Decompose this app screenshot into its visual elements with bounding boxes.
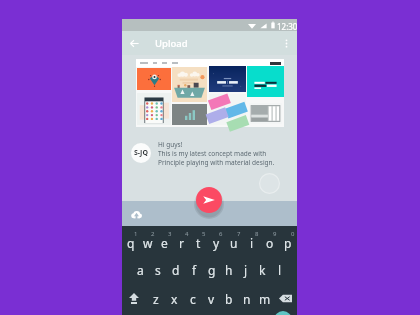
staticText: Upload	[155, 37, 188, 50]
button[interactable]: Shift	[122, 284, 146, 313]
staticText: t	[196, 235, 201, 251]
button[interactable]: q	[122, 226, 139, 255]
button[interactable]: d	[167, 255, 185, 284]
button[interactable]: i	[243, 226, 261, 255]
staticText: f	[192, 262, 197, 278]
button[interactable]: p	[279, 226, 297, 255]
button[interactable]: l	[271, 255, 288, 284]
staticText: 6	[219, 230, 223, 238]
staticText: y	[213, 235, 220, 251]
staticText: w	[143, 235, 153, 251]
staticText: 8	[255, 230, 259, 238]
button[interactable]: Backspace	[274, 284, 297, 313]
staticText: 7	[237, 230, 241, 238]
staticText: v	[208, 291, 215, 307]
button[interactable]: c	[184, 284, 202, 313]
button[interactable]: g	[203, 255, 220, 284]
button[interactable]: Send	[196, 187, 222, 213]
button[interactable]: z	[146, 284, 165, 313]
button[interactable]: More options	[278, 35, 294, 51]
button[interactable]: o	[261, 226, 279, 255]
button[interactable]: f	[185, 255, 203, 284]
staticText: 12:30	[277, 21, 298, 32]
staticText: l	[278, 262, 282, 278]
button[interactable]: k	[254, 255, 271, 284]
button[interactable]: Upload to cloud	[129, 207, 143, 221]
staticText: s	[155, 262, 161, 278]
staticText: o	[266, 235, 274, 251]
staticText: This is my latest concept made with	[158, 149, 267, 158]
button[interactable]: w	[139, 226, 156, 255]
staticText: 1	[134, 230, 138, 238]
staticText: m	[259, 291, 271, 307]
staticText: h	[225, 262, 233, 278]
staticText: x	[171, 291, 178, 307]
staticText: g	[208, 262, 216, 278]
button[interactable]: Enter	[274, 311, 292, 315]
staticText: 4	[185, 230, 189, 238]
button[interactable]: n	[238, 284, 256, 313]
button[interactable]: x	[165, 284, 184, 313]
button[interactable]: r	[173, 226, 190, 255]
staticText: 9	[273, 230, 277, 238]
staticText: c	[190, 291, 196, 307]
staticText: 5	[202, 230, 206, 238]
button[interactable]: e	[156, 226, 173, 255]
staticText: u	[230, 235, 238, 251]
staticText: i	[250, 235, 254, 251]
staticText: p	[284, 235, 292, 251]
staticText: n	[243, 291, 251, 307]
button[interactable]: Back	[126, 35, 142, 51]
staticText: e	[161, 235, 168, 251]
staticText: 0	[291, 230, 295, 238]
staticText: 2	[151, 230, 155, 238]
staticText: j	[244, 262, 248, 278]
button[interactable]: t	[190, 226, 207, 255]
staticText: q	[127, 235, 135, 251]
button[interactable]: y	[207, 226, 225, 255]
button[interactable]: S-JQ	[131, 143, 151, 163]
staticText: b	[225, 291, 233, 307]
button[interactable]: a	[131, 255, 149, 284]
button[interactable]	[136, 59, 284, 127]
button[interactable]: j	[237, 255, 254, 284]
button[interactable]: s	[149, 255, 167, 284]
staticText: r	[179, 235, 184, 251]
staticText: S-JQ	[134, 148, 148, 158]
button[interactable]: v	[202, 284, 220, 313]
staticText: Hi guys!	[158, 140, 183, 149]
staticText: k	[259, 262, 266, 278]
staticText: d	[172, 262, 180, 278]
button[interactable]: m	[256, 284, 274, 313]
staticText: a	[137, 262, 144, 278]
staticText: 3	[168, 230, 172, 238]
button[interactable]: b	[220, 284, 238, 313]
button[interactable]: u	[225, 226, 243, 255]
staticText: z	[153, 291, 159, 307]
button[interactable]: h	[220, 255, 237, 284]
staticText: Principle playing with material design.	[158, 158, 275, 167]
